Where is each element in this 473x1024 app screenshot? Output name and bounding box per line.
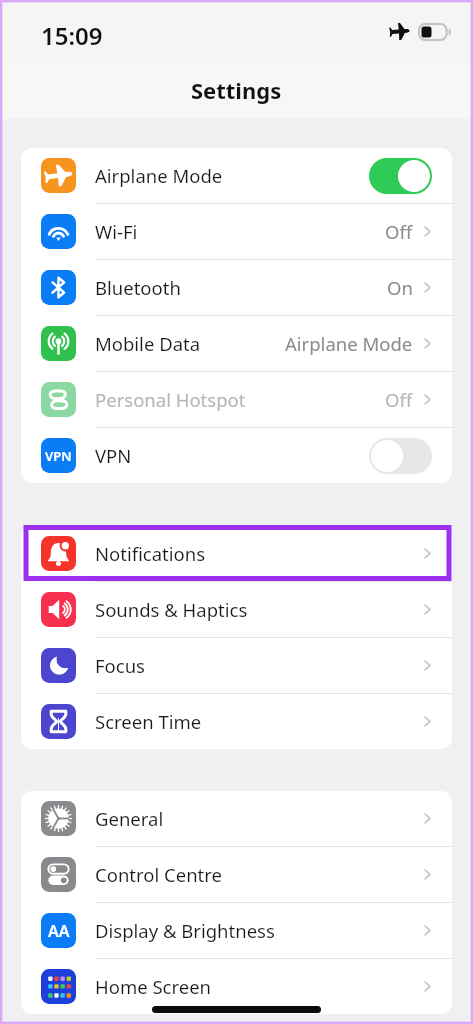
button[interactable]: Bluetooth bbox=[21, 260, 452, 315]
staticText: On bbox=[387, 275, 413, 300]
button[interactable]: General bbox=[21, 791, 452, 846]
button[interactable]: Focus bbox=[21, 638, 452, 693]
button[interactable]: Personal Hotspot bbox=[21, 372, 452, 427]
staticText: Settings bbox=[191, 75, 282, 105]
staticText: Bluetooth bbox=[95, 275, 181, 300]
staticText: Airplane Mode bbox=[285, 331, 413, 356]
staticText: 15:09 bbox=[41, 19, 103, 52]
staticText: Off bbox=[385, 387, 413, 412]
button[interactable]: Sounds & Haptics bbox=[21, 582, 452, 637]
button[interactable]: Switch off bbox=[369, 438, 432, 474]
button[interactable]: Screen Time bbox=[21, 694, 452, 749]
button[interactable]: Home Screen bbox=[21, 959, 452, 1014]
button[interactable]: Mobile Data bbox=[21, 316, 452, 371]
button[interactable]: Notifications bbox=[21, 526, 452, 581]
staticText: Display & Brightness bbox=[95, 918, 275, 943]
staticText: Screen Time bbox=[95, 709, 202, 734]
button[interactable]: Airplane Mode bbox=[21, 148, 452, 203]
staticText: Off bbox=[385, 219, 413, 244]
staticText: Wi-Fi bbox=[95, 219, 138, 244]
button[interactable]: VPN bbox=[21, 428, 452, 483]
staticText: Focus bbox=[95, 653, 145, 678]
staticText: AA bbox=[48, 920, 70, 942]
staticText: Home Screen bbox=[95, 974, 212, 999]
staticText: Control Centre bbox=[95, 862, 222, 887]
staticText: Mobile Data bbox=[95, 331, 201, 356]
button[interactable]: Switch on bbox=[369, 158, 432, 194]
staticText: Sounds & Haptics bbox=[95, 597, 248, 622]
staticText: General bbox=[95, 806, 164, 831]
button[interactable]: AA bbox=[21, 903, 452, 958]
staticText: Notifications bbox=[95, 541, 206, 566]
staticText: VPN bbox=[45, 447, 72, 465]
staticText: VPN bbox=[95, 443, 132, 468]
button[interactable]: Wi-Fi bbox=[21, 204, 452, 259]
staticText: Personal Hotspot bbox=[95, 387, 246, 412]
staticText: Airplane Mode bbox=[95, 163, 223, 188]
button[interactable]: Control Centre bbox=[21, 847, 452, 902]
